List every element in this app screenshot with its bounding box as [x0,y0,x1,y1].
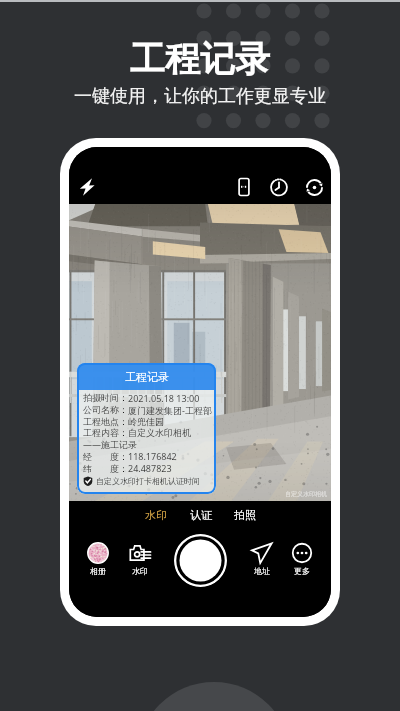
staticText: 纬 度： [83,462,128,474]
staticText: 厦门建发集团-工程部 [128,404,212,416]
button[interactable]: 拍照 [232,506,258,524]
staticText: 地址 [254,566,270,576]
button[interactable]: Switch camera [304,177,325,198]
button[interactable]: Timer [269,177,289,197]
staticText: 公司名称： [83,404,128,415]
staticText: 2021.05.18 13:00 [128,392,200,404]
button[interactable]: Album [80,542,116,576]
button[interactable]: 认证 [188,506,214,524]
button[interactable]: More [284,542,320,576]
button[interactable]: Flash [78,178,96,196]
staticText: ——施工记录 [83,438,138,450]
button[interactable]: 水印 [143,506,169,524]
staticText: 经 度： [83,450,128,462]
staticText: 自定义水印相机 [285,490,327,498]
staticText: 24.487823 [128,462,172,474]
staticText: 更多 [294,566,310,576]
staticText: 工程记录 [130,37,270,81]
staticText: 相册 [90,566,106,576]
staticText: 水印 [132,566,148,576]
button[interactable]: Watermark [122,542,158,576]
staticText: 工程内容： [83,427,128,438]
staticText: 工程记录 [125,370,169,384]
button[interactable]: Aspect ratio 3:4 [234,177,254,197]
staticText: 自定义水印打卡相机认证时间 [96,476,200,486]
staticText: 岭兜佳园 [128,416,164,427]
button[interactable]: 工程记录 [77,363,216,494]
staticText: 认证 [190,508,212,522]
staticText: 拍摄时间： [83,392,128,403]
staticText: 水印 [145,508,167,522]
staticText: 自定义水印相机 [128,427,191,438]
staticText: 工程地点： [83,416,128,427]
button[interactable]: Shutter [174,534,227,587]
staticText: 拍照 [234,508,256,522]
staticText: 118.176842 [128,450,177,462]
button[interactable]: Location [244,542,280,576]
staticText: 一键使用，让你的工作更显专业 [74,85,326,108]
